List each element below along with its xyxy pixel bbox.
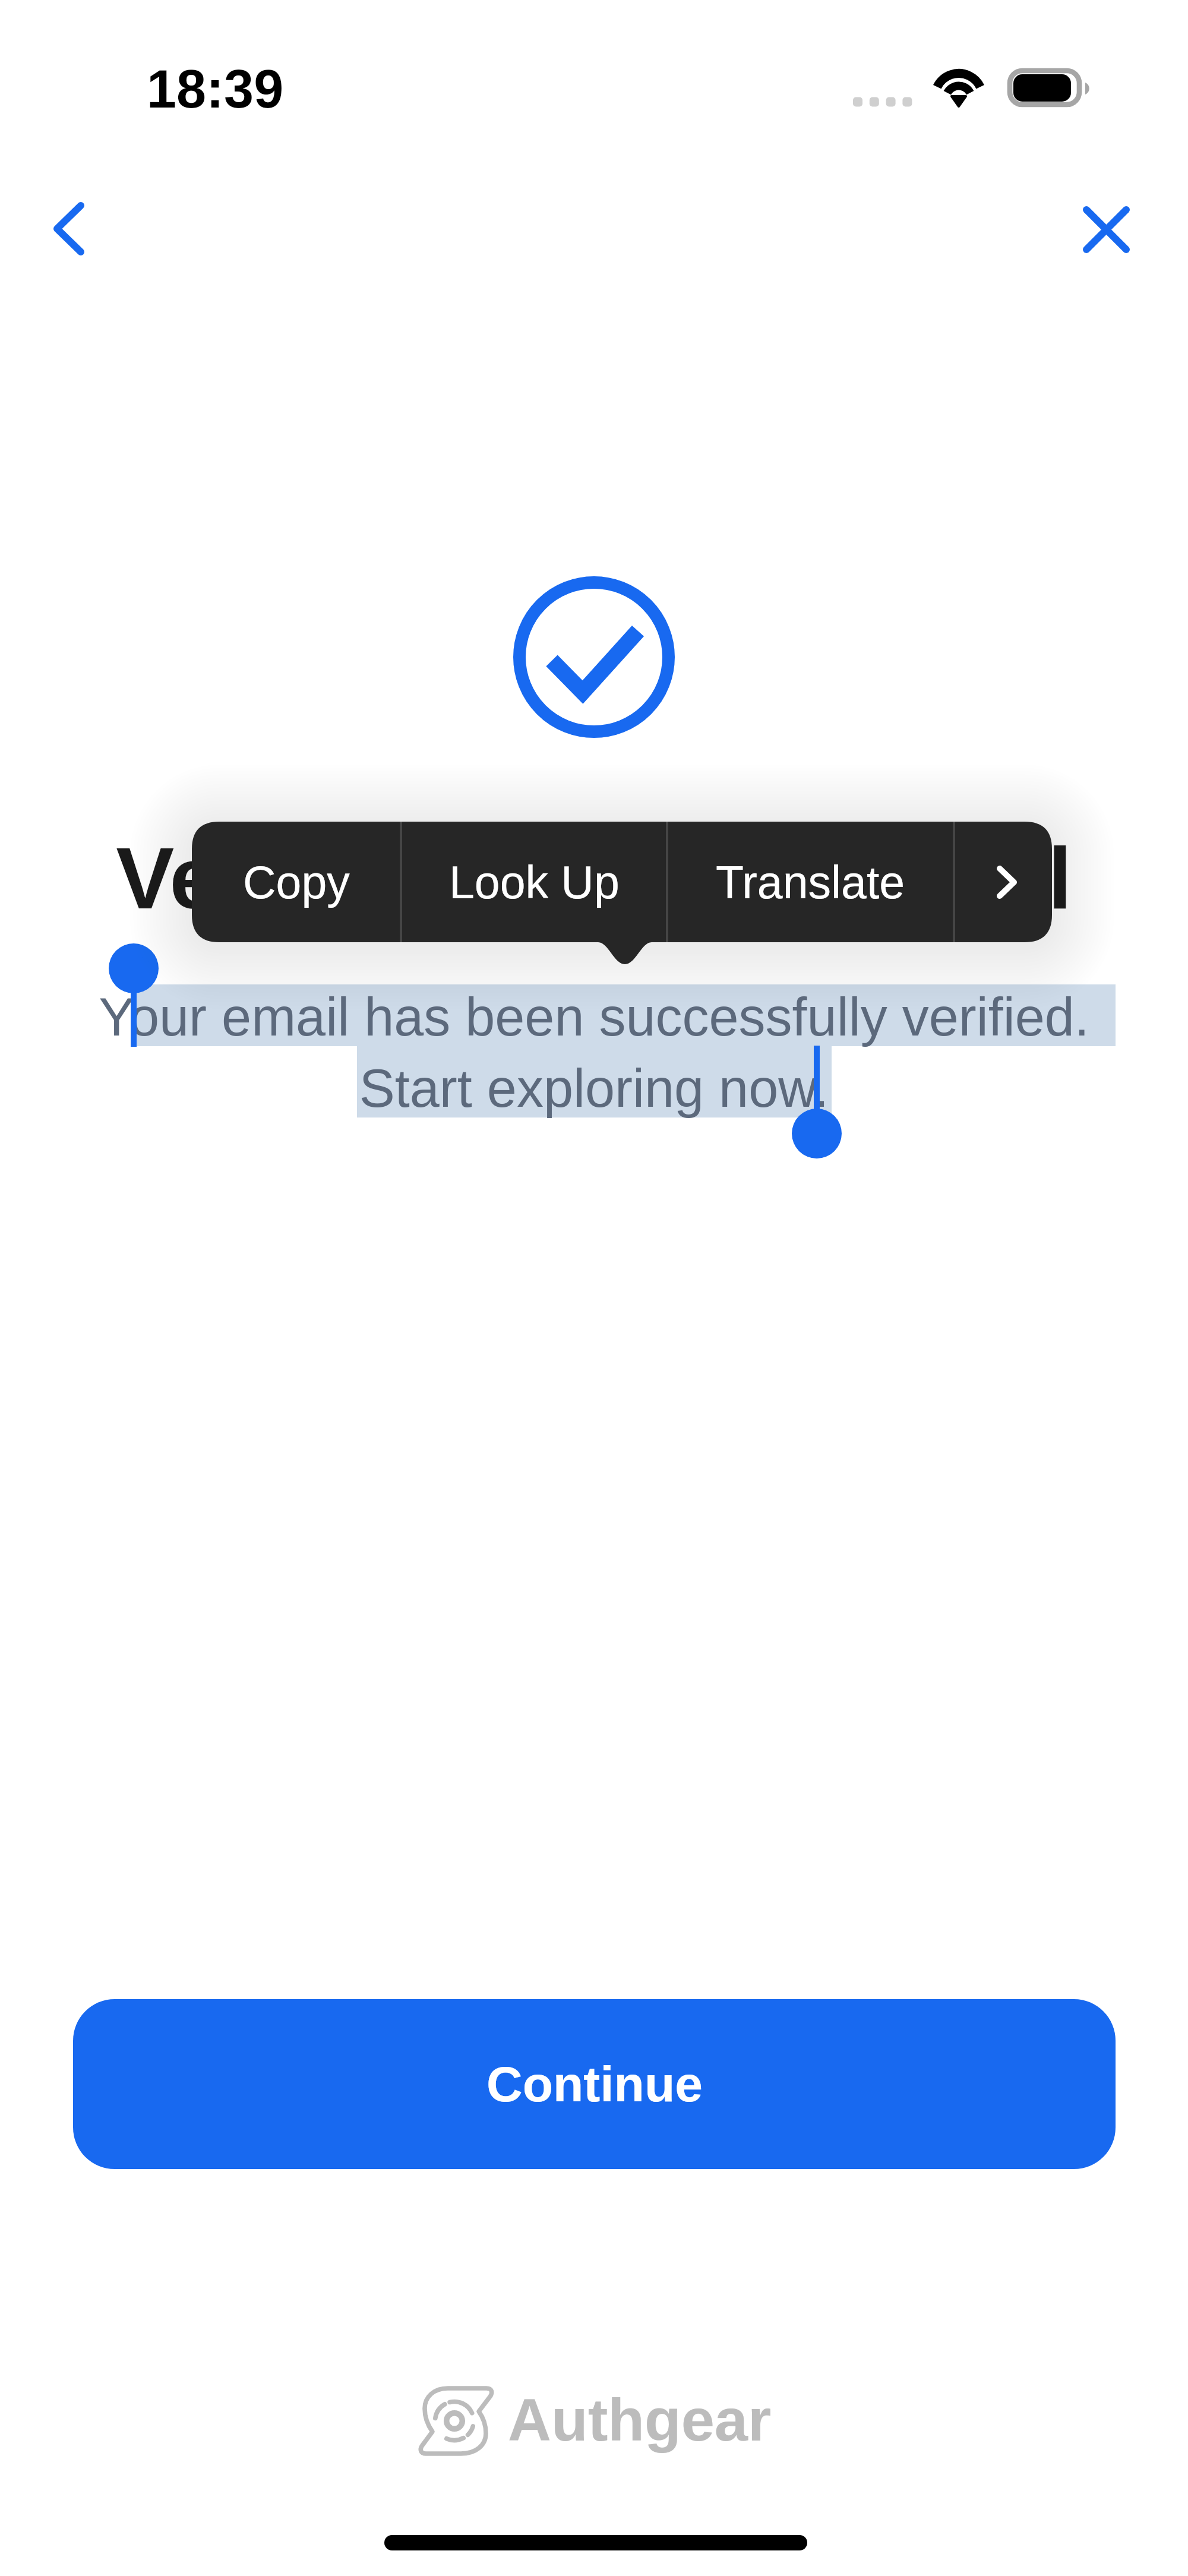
button[interactable]: More actions bbox=[954, 822, 1052, 942]
staticText: 18:39 bbox=[147, 59, 284, 119]
staticText: Translate bbox=[716, 857, 905, 908]
button[interactable]: Back bbox=[24, 178, 125, 279]
button[interactable]: Copy bbox=[192, 822, 401, 942]
staticText: Copy bbox=[243, 857, 350, 908]
staticText: Continue bbox=[486, 2056, 703, 2112]
button[interactable]: Look Up bbox=[401, 822, 667, 942]
staticText: Authgear bbox=[508, 2386, 772, 2454]
staticText: Your email has been successfully verifie… bbox=[0, 987, 1188, 1118]
button[interactable]: Translate bbox=[667, 822, 954, 942]
button[interactable]: Close bbox=[1066, 190, 1143, 267]
staticText: Verification Successful bbox=[0, 829, 1188, 927]
button[interactable]: Continue bbox=[73, 1999, 1116, 2169]
staticText: Look Up bbox=[449, 857, 620, 908]
